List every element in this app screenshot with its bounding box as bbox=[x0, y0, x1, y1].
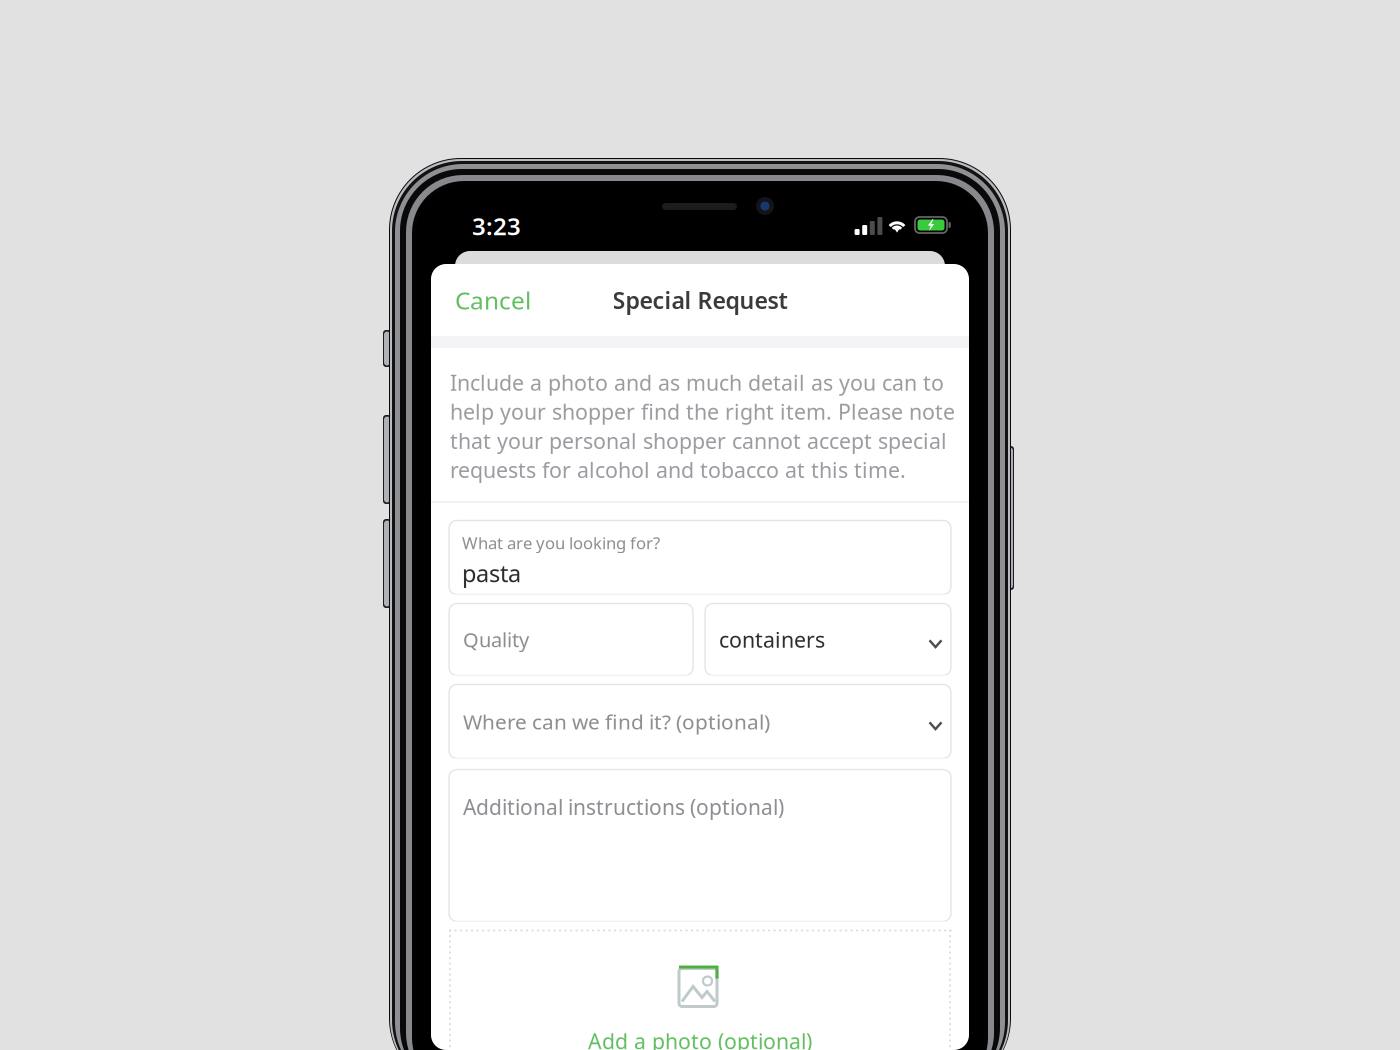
staticText: Add a photo (optional) bbox=[588, 1026, 812, 1050]
staticText: Cancel bbox=[455, 283, 531, 317]
staticText: Special Request bbox=[612, 284, 787, 316]
staticText: Include a photo and as much detail as yo… bbox=[450, 368, 955, 484]
staticText: Additional instructions (optional) bbox=[463, 792, 784, 821]
staticText: Where can we find it? (optional) bbox=[463, 707, 770, 736]
staticText: 3:23 bbox=[472, 210, 521, 242]
button[interactable]: Where can we find it? (optional) bbox=[449, 684, 951, 758]
button[interactable]: containers bbox=[705, 603, 951, 675]
button[interactable]: Cancel bbox=[431, 264, 549, 336]
button[interactable]: What are you looking for? bbox=[449, 520, 951, 594]
button[interactable]: Quality bbox=[449, 603, 693, 675]
staticText: pasta bbox=[462, 557, 521, 589]
staticText: Quality bbox=[463, 626, 529, 653]
staticText: containers bbox=[719, 625, 825, 654]
button[interactable]: Additional instructions (optional) bbox=[449, 769, 951, 921]
button[interactable]: Add a photo (optional) bbox=[449, 929, 951, 1050]
staticText: What are you looking for? bbox=[462, 531, 660, 554]
